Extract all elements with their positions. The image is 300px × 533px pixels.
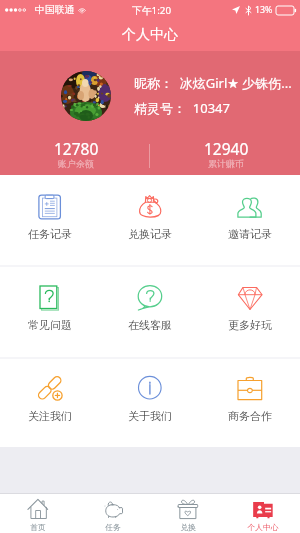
staticText: 关注我们 bbox=[28, 409, 72, 423]
button[interactable]: 12780 bbox=[26, 138, 126, 170]
staticText: 个人中心 bbox=[247, 522, 279, 532]
button[interactable]: 常见问题 bbox=[0, 266, 100, 356]
staticText: 13% bbox=[255, 4, 273, 16]
button[interactable]: 邀请记录 bbox=[200, 175, 300, 265]
staticText: 商务合作 bbox=[228, 409, 272, 423]
staticText: 中国联通 bbox=[35, 4, 75, 16]
staticText: 任务 bbox=[105, 522, 121, 532]
staticText: 关于我们 bbox=[128, 409, 172, 423]
button[interactable]: 任务 bbox=[75, 494, 150, 533]
button[interactable]: 个人中心 bbox=[225, 494, 300, 533]
staticText: 常见问题 bbox=[28, 318, 72, 332]
button[interactable]: 商务合作 bbox=[200, 357, 300, 447]
staticText: 12940 bbox=[204, 138, 249, 159]
staticText: 更多好玩 bbox=[228, 318, 272, 332]
button[interactable]: 任务记录 bbox=[0, 175, 100, 265]
button[interactable]: 12940 bbox=[176, 138, 276, 170]
button[interactable]: 在线客服 bbox=[100, 266, 200, 356]
staticText: 在线客服 bbox=[128, 318, 172, 332]
staticText: 任务记录 bbox=[28, 227, 72, 241]
staticText: 12780 bbox=[54, 138, 99, 159]
staticText: 邀请记录 bbox=[228, 227, 272, 241]
button[interactable]: 关注我们 bbox=[0, 357, 100, 447]
staticText: 下午1:20 bbox=[132, 4, 172, 17]
staticText: 昵称： 冰炫Girl★ 少铢伤... bbox=[134, 74, 292, 92]
button[interactable]: 兑换记录 bbox=[100, 175, 200, 265]
staticText: 个人中心 bbox=[122, 26, 178, 44]
button[interactable]: 兑换 bbox=[150, 494, 225, 533]
button[interactable]: 关于我们 bbox=[100, 357, 200, 447]
button[interactable]: 更多好玩 bbox=[200, 266, 300, 356]
staticText: 首页 bbox=[30, 522, 46, 532]
button[interactable]: Avatar bbox=[61, 71, 111, 121]
staticText: 兑换 bbox=[180, 522, 196, 532]
button[interactable]: 首页 bbox=[0, 494, 75, 533]
staticText: 账户余额 bbox=[58, 158, 94, 169]
staticText: 兑换记录 bbox=[128, 227, 172, 241]
staticText: 累计赚币 bbox=[208, 158, 244, 169]
staticText: 精灵号： 10347 bbox=[134, 99, 230, 117]
